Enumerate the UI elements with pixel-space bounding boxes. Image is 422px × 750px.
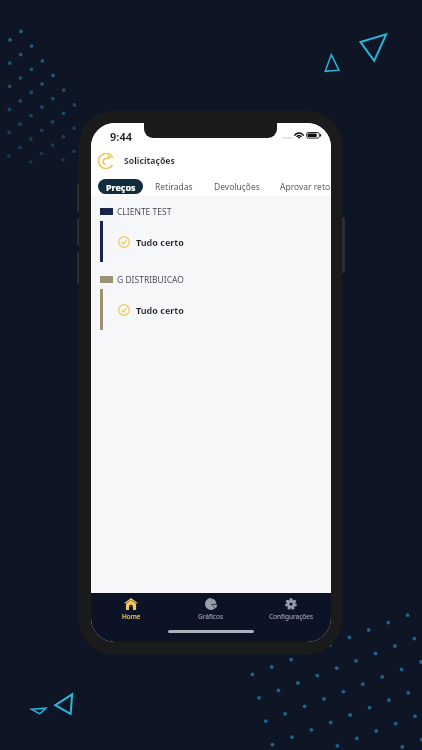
staticText: 9:44 bbox=[110, 129, 132, 144]
staticText: Tudo certo bbox=[136, 304, 184, 316]
staticText: CLIENTE TEST bbox=[117, 206, 172, 218]
staticText: Configurações bbox=[269, 612, 314, 621]
button[interactable]: Tudo certo bbox=[100, 289, 331, 330]
staticText: Tudo certo bbox=[136, 236, 184, 248]
button[interactable]: Preços bbox=[98, 179, 143, 194]
staticText: Home bbox=[122, 612, 141, 621]
button[interactable]: Home bbox=[91, 598, 171, 621]
staticText: Devoluções bbox=[214, 181, 260, 193]
staticText: Solicitações bbox=[124, 155, 175, 167]
button[interactable]: Tudo certo bbox=[100, 221, 331, 262]
staticText: Preços bbox=[106, 181, 136, 193]
button[interactable]: Configurações bbox=[251, 598, 331, 621]
button[interactable]: Gráficos bbox=[171, 598, 251, 621]
button[interactable]: Devoluções bbox=[214, 179, 260, 194]
staticText: Aprovar reto bbox=[280, 181, 331, 193]
staticText: Retiradas bbox=[155, 181, 193, 193]
button[interactable]: Retiradas bbox=[155, 179, 193, 194]
button[interactable]: CLIENTE TEST bbox=[100, 205, 172, 218]
staticText: Gráficos bbox=[198, 612, 224, 621]
staticText: G DISTRIBUICAO bbox=[117, 274, 184, 286]
button[interactable]: Aprovar reto bbox=[280, 179, 331, 194]
button[interactable]: G DISTRIBUICAO bbox=[100, 273, 184, 286]
